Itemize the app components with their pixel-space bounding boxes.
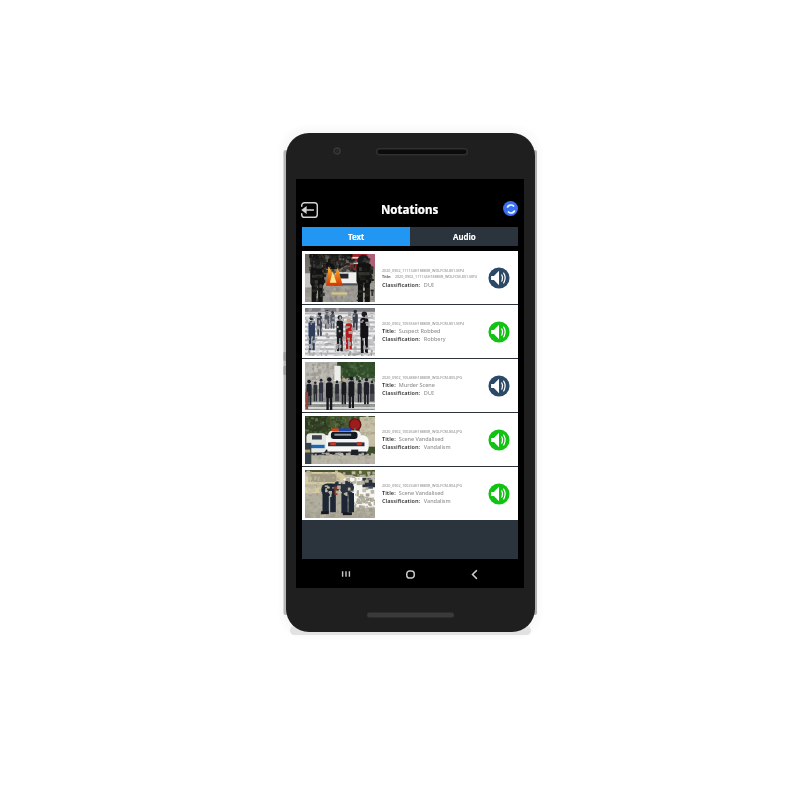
button[interactable]: Play audio [486,427,512,453]
button[interactable]: Play audio [486,481,512,507]
staticText: Murder Scene [396,381,435,388]
button[interactable]: Back [464,564,484,584]
staticText: Title: [382,435,396,442]
staticText: Audio [453,231,476,242]
button[interactable]: Text [302,227,410,246]
staticText: Vandalism [421,443,451,450]
staticText: DUI [421,389,434,396]
staticText: Title: [382,381,396,388]
staticText: Text [348,231,365,242]
button[interactable]: 2020_0902_105556H18880R_WOLFCM-801.MP4 [302,305,518,358]
staticText: Title: [382,489,396,496]
staticText: Title: [382,327,396,334]
staticText: Notations [381,202,439,218]
button[interactable]: Recents [336,564,356,584]
staticText: Classification: [382,497,421,504]
staticText: Scene Vandalised [396,435,444,442]
button[interactable]: Play audio [486,319,512,345]
button[interactable]: 2020_0902_111134H18880R_WOLFCM-801.MP4 [302,251,518,304]
staticText: 2020_0902_105488H18880R_WOLFCM-805.JPG [382,375,463,380]
button[interactable]: 2020_0902_100234H18880R_WOLFCM-804.JPG [302,467,518,520]
staticText: 2020_0902_100234H18880R_WOLFCM-804.JPG [382,483,463,488]
button[interactable]: Play audio [486,373,512,399]
staticText: Classification: [382,335,421,342]
staticText: 2020_0902_111134H18880R_WOLFCM-801.MP4 [382,268,464,273]
button[interactable]: 2020_0902_105488H18880R_WOLFCM-805.JPG [302,359,518,412]
staticText: 2020_0902_100264H18880R_WOLFCM-804.JPG [382,429,463,434]
staticText: Suspect Robbed [396,327,441,334]
button[interactable]: Audio [410,227,518,246]
button[interactable]: Refresh [503,201,518,216]
button[interactable]: Exit [298,199,320,221]
button[interactable]: Home [400,564,420,584]
staticText: Classification: [382,389,421,396]
staticText: Scene Vandalised [396,489,444,496]
staticText: 2020_0902_105556H18880R_WOLFCM-801.MP4 [382,321,464,326]
staticText: Robbery [421,335,446,342]
staticText: Title: [382,274,392,279]
staticText: Classification: [382,443,421,450]
button[interactable]: Play audio [486,265,512,291]
button[interactable]: 2020_0902_100264H18880R_WOLFCM-804.JPG [302,413,518,466]
staticText: Vandalism [421,497,451,504]
staticText: Classification: [382,281,421,288]
staticText: DUI [421,281,434,288]
staticText: 2020_0902_111134H18880R_WOLFCM-801.MP4 [392,274,477,279]
